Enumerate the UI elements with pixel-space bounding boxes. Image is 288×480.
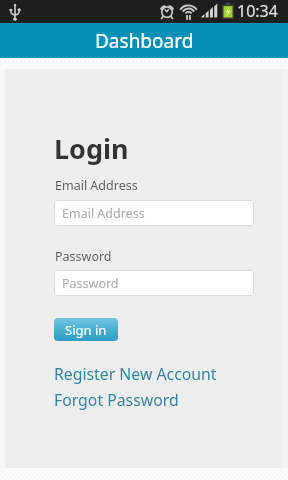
staticText: Register New Account — [54, 363, 217, 385]
button[interactable]: Forgot Password — [54, 389, 179, 411]
button[interactable]: Register New Account — [54, 363, 217, 385]
button[interactable]: Password — [54, 270, 254, 296]
staticText: Email Address — [62, 205, 145, 222]
button[interactable]: Sign in — [54, 318, 118, 341]
staticText: Password — [55, 248, 112, 265]
other: USB connected — [8, 3, 22, 21]
staticText: Forgot Password — [54, 389, 179, 411]
staticText: Password — [62, 275, 119, 292]
staticText: Login — [54, 130, 129, 167]
button[interactable]: Email Address — [54, 200, 254, 226]
staticText: Email Address — [55, 177, 138, 194]
staticText: 10:34 — [237, 0, 278, 22]
staticText: Dashboard — [95, 28, 194, 54]
staticText: Sign in — [65, 321, 107, 339]
